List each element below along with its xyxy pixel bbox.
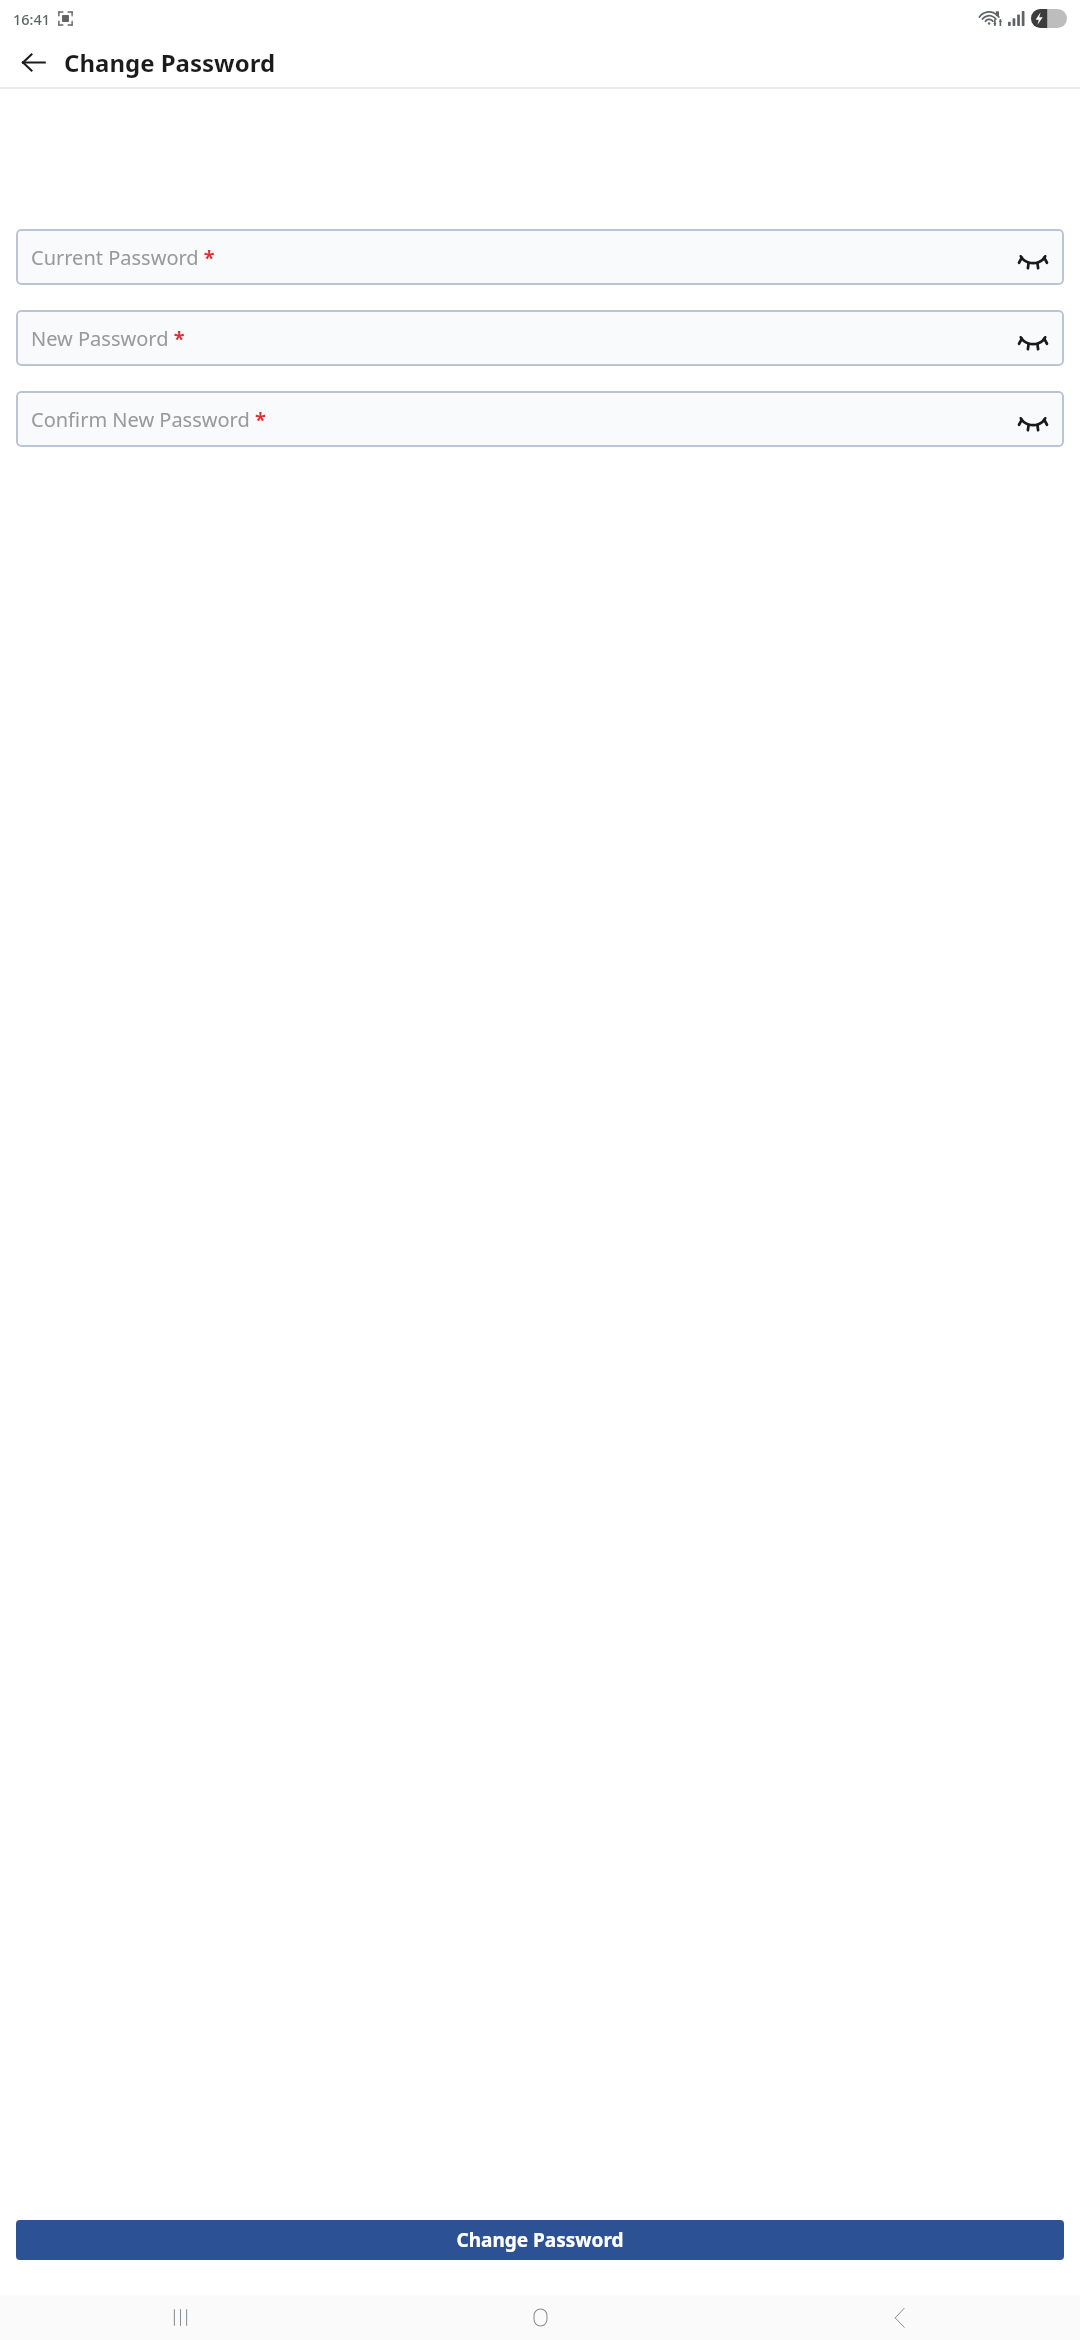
button[interactable]: Home bbox=[360, 2295, 720, 2340]
button[interactable]: Current Password * bbox=[16, 229, 1064, 285]
button[interactable]: Show password bbox=[1014, 238, 1052, 276]
button[interactable]: Confirm New Password * bbox=[16, 391, 1064, 447]
button[interactable]: Back bbox=[11, 40, 55, 84]
staticText: Change Password bbox=[456, 2227, 624, 2253]
button[interactable]: New Password * bbox=[16, 310, 1064, 366]
staticText: 16:41 bbox=[13, 9, 51, 29]
button[interactable]: Recents bbox=[0, 2295, 360, 2340]
button[interactable]: Back bbox=[720, 2295, 1080, 2340]
button[interactable]: Show password bbox=[1014, 400, 1052, 438]
staticText: Current Password * bbox=[31, 244, 215, 271]
button[interactable]: Change Password bbox=[16, 2220, 1064, 2260]
staticText: Confirm New Password * bbox=[31, 406, 266, 433]
button[interactable]: Show password bbox=[1014, 319, 1052, 357]
staticText: Change Password bbox=[64, 46, 276, 79]
staticText: New Password * bbox=[31, 325, 185, 352]
